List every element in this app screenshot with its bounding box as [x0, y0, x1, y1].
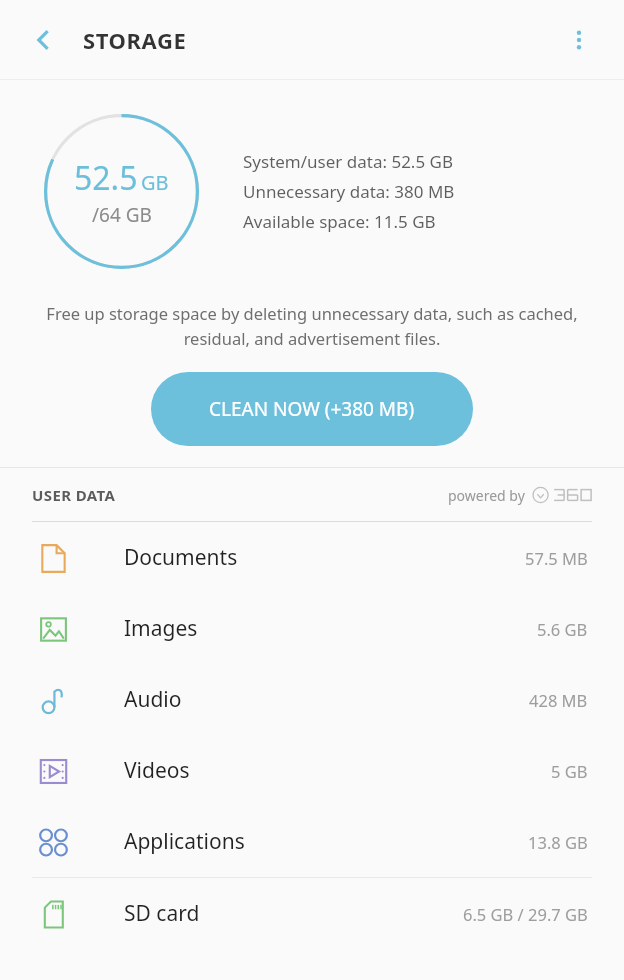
button[interactable]: More options	[556, 17, 602, 63]
staticText: Applications	[124, 827, 245, 856]
staticText: 428 MB	[529, 689, 588, 711]
staticText: Available space: 11.5 GB	[243, 210, 436, 233]
button[interactable]: SD card	[0, 878, 624, 949]
staticText: SD card	[124, 899, 200, 928]
button[interactable]: Images	[0, 593, 624, 664]
staticText: System/user data: 52.5 GB	[243, 150, 453, 173]
staticText: CLEAN NOW (+380 MB)	[209, 396, 415, 422]
staticText: 5 GB	[551, 760, 588, 782]
staticText: Audio	[124, 685, 182, 714]
button[interactable]: Applications	[0, 806, 624, 877]
staticText: 5.6 GB	[537, 618, 588, 640]
button[interactable]: Videos	[0, 735, 624, 806]
staticText: Free up storage space by deleting unnece…	[36, 302, 588, 350]
staticText: Images	[124, 614, 198, 643]
button[interactable]: Audio	[0, 664, 624, 735]
staticText: 6.5 GB / 29.7 GB	[463, 903, 588, 925]
staticText: 57.5 MB	[525, 547, 588, 569]
button[interactable]: Back	[22, 18, 66, 62]
staticText: 13.8 GB	[528, 831, 588, 853]
button[interactable]: Documents	[0, 522, 624, 593]
button[interactable]: CLEAN NOW (+380 MB)	[151, 372, 473, 446]
staticText: Documents	[124, 543, 238, 572]
staticText: 52.5	[74, 156, 138, 200]
staticText: STORAGE	[83, 25, 187, 55]
staticText: USER DATA	[32, 485, 116, 505]
staticText: Videos	[124, 756, 190, 785]
staticText: GB	[141, 169, 169, 196]
staticText: powered by	[448, 486, 525, 505]
staticText: /64 GB	[92, 202, 152, 228]
staticText: Unnecessary data: 380 MB	[243, 180, 455, 203]
